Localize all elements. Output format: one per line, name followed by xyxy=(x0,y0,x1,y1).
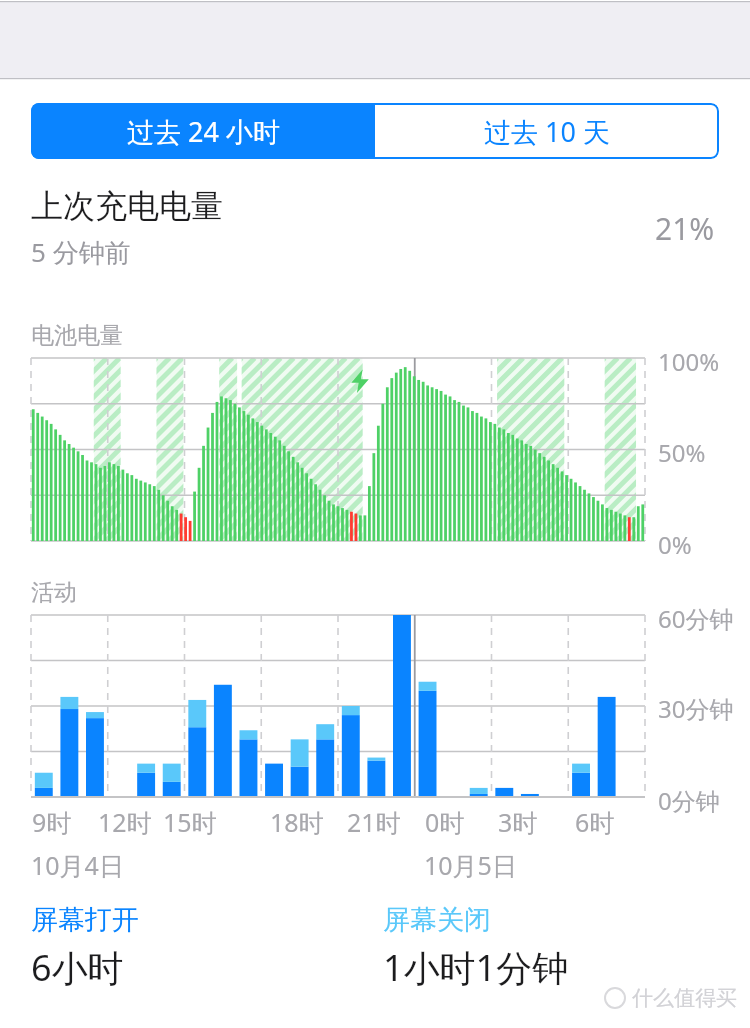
staticText: 5 分钟前 xyxy=(31,234,131,270)
button[interactable]: 屏幕关闭 xyxy=(383,903,577,992)
button[interactable]: 屏幕打开 xyxy=(31,903,147,992)
button[interactable]: 过去 24 小时 xyxy=(31,103,375,159)
staticText: 9时 xyxy=(32,805,72,839)
staticText: 屏幕打开 xyxy=(31,903,139,937)
staticText: 30分钟 xyxy=(658,692,734,725)
staticText: 3时 xyxy=(498,805,538,839)
staticText: 100% xyxy=(658,345,720,378)
staticText: 12时 xyxy=(98,805,152,839)
staticText: 屏幕关闭 xyxy=(383,903,491,937)
staticText: 50% xyxy=(658,436,706,469)
button[interactable]: 过去 10 天 xyxy=(375,103,719,159)
staticText: 60分钟 xyxy=(658,602,734,635)
staticText: 21时 xyxy=(347,805,401,839)
staticText: 上次充电电量 xyxy=(31,186,223,226)
staticText: 活动 xyxy=(31,578,77,607)
staticText: 6时 xyxy=(575,805,615,839)
staticText: 6小时 xyxy=(31,943,124,992)
staticText: 10月4日 xyxy=(31,848,124,882)
staticText: 15时 xyxy=(163,805,217,839)
staticText: 0时 xyxy=(425,805,465,839)
staticText: 0% xyxy=(658,528,692,561)
staticText: 1小时1分钟 xyxy=(383,943,569,992)
staticText: 18时 xyxy=(270,805,324,839)
staticText: 过去 24 小时 xyxy=(127,113,280,150)
staticText: 0分钟 xyxy=(658,784,720,817)
staticText: 21% xyxy=(655,208,715,249)
staticText: 电池电量 xyxy=(31,321,123,350)
staticText: 什么值得买 xyxy=(632,985,737,1011)
staticText: 10月5日 xyxy=(424,848,517,882)
staticText: 过去 10 天 xyxy=(484,113,610,150)
